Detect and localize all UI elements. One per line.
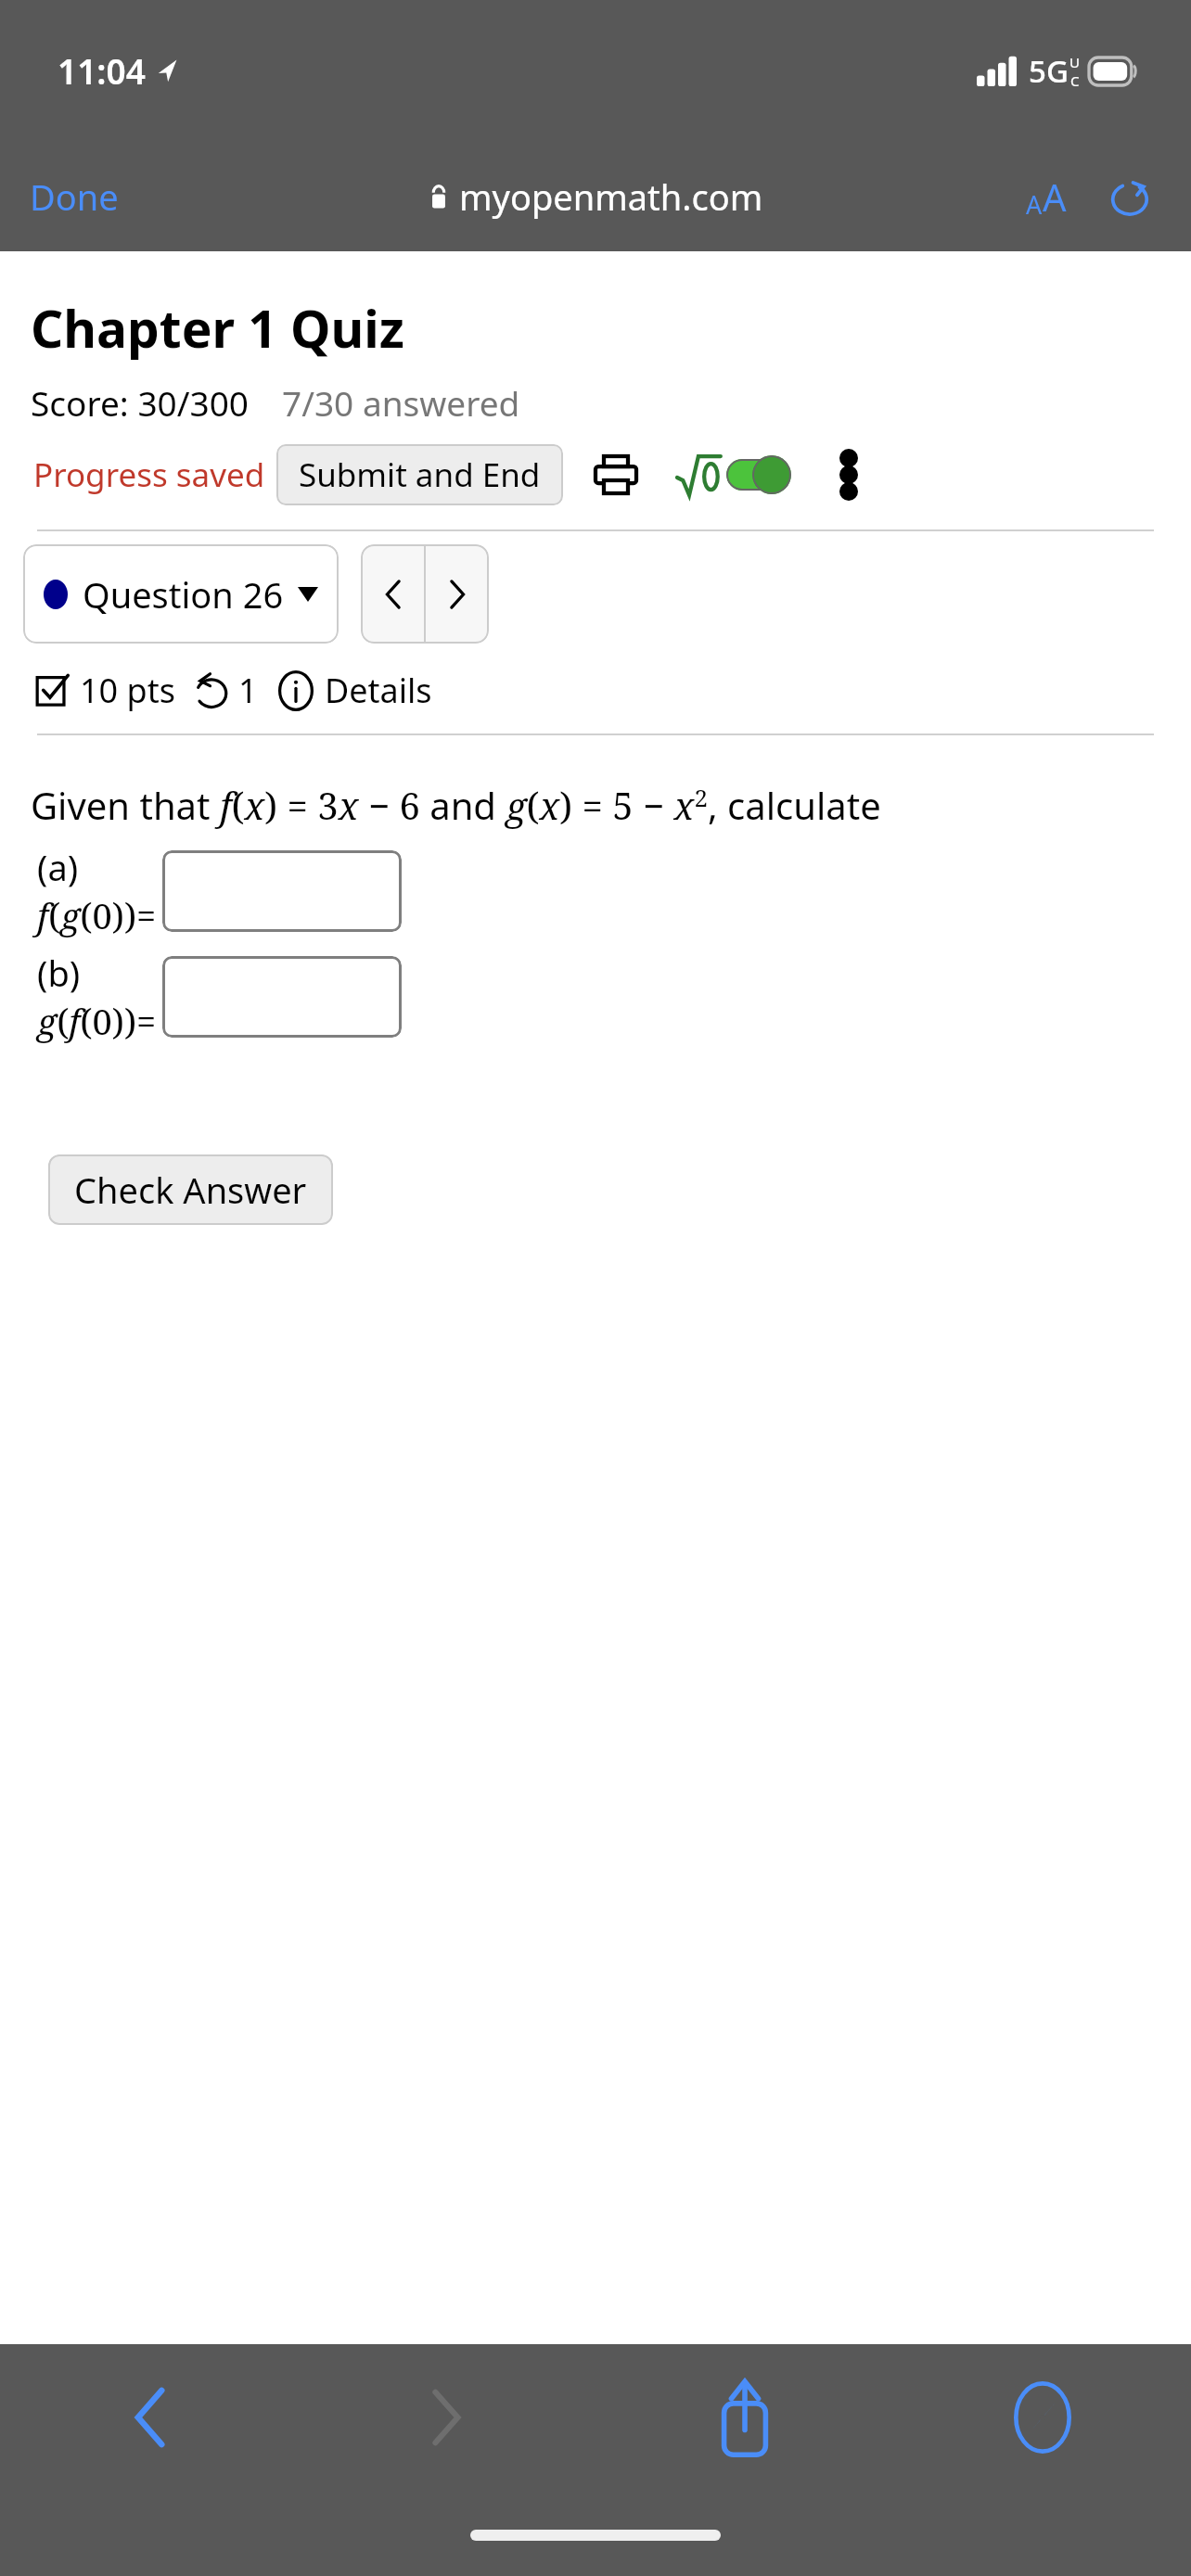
staticText: Question 26 [83,570,284,618]
staticText: A [1026,187,1043,222]
staticText: 11:04 [58,47,146,94]
button[interactable]: myopenmath.com [418,167,773,226]
staticText: Score: 30/300 [31,379,249,426]
staticText: A [1043,172,1067,222]
staticText: 7/30 answered [282,379,520,426]
button[interactable]: Details [278,668,432,713]
button[interactable] [162,956,402,1038]
button[interactable]: Share [595,2366,893,2468]
button[interactable]: Check Answer [48,1154,333,1225]
button[interactable]: Done [19,165,130,228]
staticText: 10 pts [80,668,175,713]
staticText: C [1070,71,1080,90]
staticText: Details [325,668,432,713]
staticText: (b) g(f(0))= [37,949,162,1045]
button[interactable]: Submit and End [276,444,563,505]
staticText: 1 [238,668,258,713]
staticText: 5G [1029,50,1069,92]
button[interactable]: Previous question [361,544,424,644]
staticText: Given that f(x) = 3x − 6 and g(x) = 5 − … [31,780,881,830]
button[interactable]: Text size [1018,164,1074,229]
staticText: (a) f(g(0))= [37,843,162,939]
button[interactable]: Back [0,2366,298,2468]
button[interactable]: Progress saved [33,453,265,497]
button[interactable]: Reload [1102,169,1158,224]
button[interactable]: Open in Safari [893,2366,1191,2468]
staticText: Check Answer [74,1166,307,1214]
button[interactable]: Print [593,452,639,498]
button[interactable] [162,850,402,932]
button[interactable]: Question 26 [23,544,339,644]
button[interactable]: More options [830,449,867,501]
staticText: myopenmath.com [459,172,763,221]
staticText: Chapter 1 Quiz [31,293,404,363]
button[interactable]: Next question [426,544,489,644]
staticText: U [1069,53,1080,71]
staticText: Submit and End [299,453,541,497]
staticText: Done [30,172,119,221]
button[interactable]: Math toggle [676,452,791,498]
